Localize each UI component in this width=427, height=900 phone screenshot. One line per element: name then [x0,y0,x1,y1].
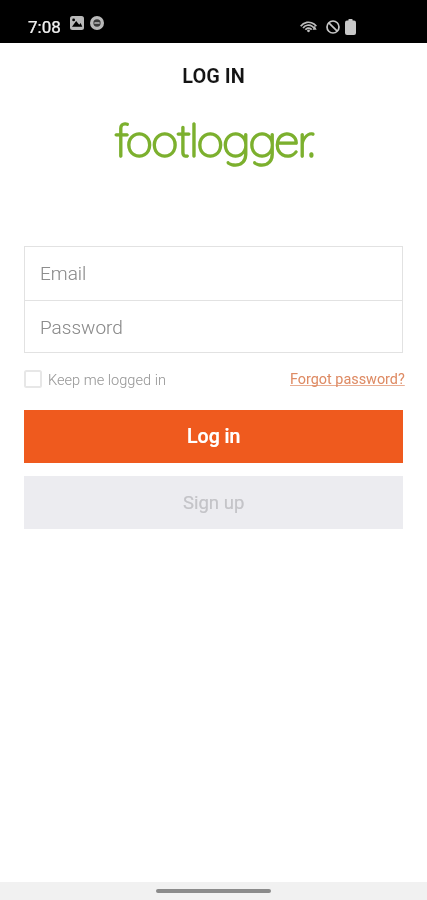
staticText: footlogger. [114,111,314,169]
staticText: Password [40,316,123,338]
button[interactable]: Forgot password? [290,371,405,388]
button[interactable]: Email [24,246,403,300]
staticText: Email [40,262,87,284]
staticText: 7:08 [28,17,61,37]
button[interactable]: Password [24,301,403,353]
staticText: Sign up [183,492,245,514]
staticText: Log in [187,425,241,448]
button[interactable]: Keep me logged in [24,370,166,388]
staticText: Keep me logged in [48,371,166,388]
button[interactable]: Sign up [24,476,403,529]
button[interactable]: Log in [24,410,403,463]
staticText: LOG IN [182,64,245,87]
